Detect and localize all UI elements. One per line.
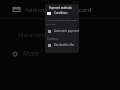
staticText: Conditions	[54, 11, 68, 15]
staticText: More	[23, 49, 40, 58]
button[interactable]: Settings	[12, 49, 40, 58]
staticText: ▮ ▮ ▮	[73, 0, 79, 4]
staticText: Payment methods	[49, 6, 72, 10]
other: Settings	[12, 51, 18, 57]
staticText: 9:41	[45, 0, 51, 4]
button[interactable]: Card	[13, 6, 20, 13]
staticText: Donation	[47, 37, 59, 41]
staticText: Attach methods and change account	[47, 19, 78, 25]
button[interactable]: Bandwidth offer	[45, 42, 79, 48]
staticText: More options	[18, 31, 56, 39]
button[interactable]: Automatic payment	[45, 28, 79, 34]
staticText: Automatic payment	[54, 29, 79, 33]
button[interactable]: Conditions	[45, 10, 79, 16]
staticText: Add credit or debit card	[25, 6, 92, 14]
staticText: Bandwidth offer	[54, 43, 75, 47]
